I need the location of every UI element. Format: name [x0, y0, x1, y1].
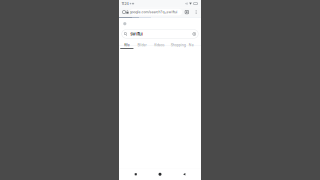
staticText: swiftui: [130, 31, 143, 37]
button[interactable]: Ne: [188, 38, 194, 45]
button[interactable]: Shopping: [170, 38, 187, 45]
button[interactable]: Back: [177, 169, 192, 179]
button[interactable]: Videos: [153, 38, 166, 45]
staticText: Alle: [124, 43, 130, 47]
staticText: Shopping: [171, 43, 186, 47]
button[interactable]: More options: [192, 7, 200, 17]
staticText: google.com/search?q=swiftui: [129, 10, 177, 14]
button[interactable]: Home: [119, 7, 130, 17]
button[interactable]: Bilder: [135, 38, 149, 45]
staticText: 11:24: [121, 1, 128, 6]
button[interactable]: Tabs: [182, 7, 192, 17]
staticText: Bilder: [137, 43, 146, 47]
button[interactable]: swiftui: [122, 30, 198, 38]
button[interactable]: Recent apps: [128, 169, 143, 179]
staticText: Ne: [189, 43, 194, 47]
button[interactable]: Home: [152, 169, 167, 179]
button[interactable]: Alle: [120, 38, 133, 45]
button[interactable]: google.com/search?q=swiftui: [130, 9, 182, 15]
staticText: Videos: [154, 43, 165, 47]
